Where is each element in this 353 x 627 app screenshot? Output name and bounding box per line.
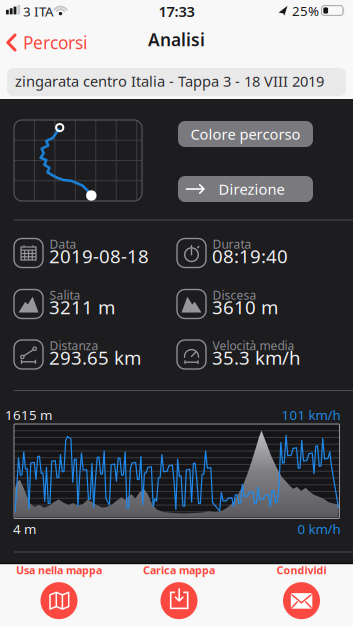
staticText: 3610 m <box>212 294 278 319</box>
button[interactable]: Percorsi <box>6 31 87 54</box>
button[interactable]: Condividi <box>236 563 353 619</box>
staticText: Analisi <box>148 28 205 51</box>
staticText: 3211 m <box>49 294 115 319</box>
staticText: 0 km/h <box>297 520 340 538</box>
button[interactable]: Direzione <box>178 176 313 202</box>
staticText: 4 m <box>13 520 36 538</box>
staticText: Condividi <box>276 563 326 577</box>
staticText: Colore percorso <box>190 124 300 144</box>
staticText: Distanza <box>49 338 98 354</box>
staticText: Data <box>49 236 76 252</box>
staticText: Salita <box>49 287 80 303</box>
staticText: Carica mappa <box>143 563 215 577</box>
button[interactable]: Colore percorso <box>178 121 313 147</box>
staticText: zingarata centro Italia - Tappa 3 - 18 V… <box>15 71 324 91</box>
staticText: Discesa <box>212 287 256 303</box>
staticText: Velocità media <box>212 338 294 354</box>
staticText: 3 ITA <box>23 2 54 20</box>
staticText: Percorsi <box>23 31 87 54</box>
staticText: 17:33 <box>158 1 194 21</box>
staticText: 2019-08-18 <box>49 243 149 268</box>
staticText: 25% <box>292 2 319 20</box>
staticText: 08:19:40 <box>212 243 288 268</box>
staticText: 293.65 km <box>49 345 141 370</box>
staticText: Direzione <box>218 179 284 199</box>
staticText: 35.3 km/h <box>212 345 301 370</box>
staticText: 101 km/h <box>281 406 340 424</box>
staticText: 1615 m <box>5 406 52 424</box>
button[interactable]: Usa nella mappa <box>0 563 124 619</box>
staticText: Usa nella mappa <box>16 563 102 577</box>
button[interactable]: Carica mappa <box>114 563 244 619</box>
staticText: Durata <box>212 236 251 252</box>
